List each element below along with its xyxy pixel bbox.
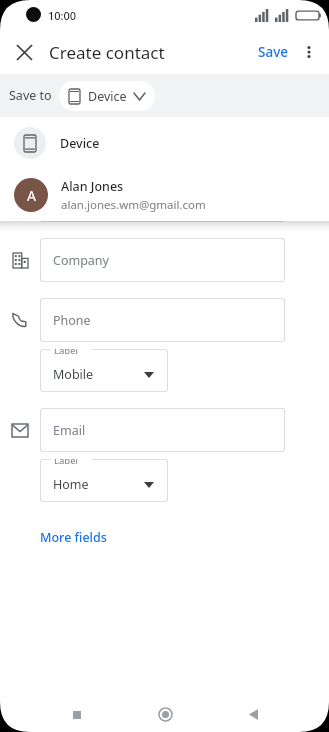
button[interactable]: More fields xyxy=(34,525,113,550)
button[interactable]: Close xyxy=(8,36,40,68)
staticText: Device xyxy=(60,135,100,152)
button[interactable]: Email xyxy=(40,408,285,452)
staticText: Home xyxy=(53,476,89,493)
staticText: Save to xyxy=(9,87,52,104)
staticText: Company xyxy=(53,252,109,269)
button[interactable]: Device xyxy=(59,81,155,111)
staticText: Phone xyxy=(53,312,91,329)
staticText: alan.jones.wm@gmail.com xyxy=(61,197,206,213)
staticText: 10:00 xyxy=(48,8,77,23)
button[interactable]: Company xyxy=(40,238,285,282)
staticText: A xyxy=(27,186,36,205)
button[interactable]: Surname xyxy=(40,178,285,222)
staticText: Mobile xyxy=(53,366,94,383)
button[interactable]: Home xyxy=(121,697,209,732)
button[interactable]: Save xyxy=(252,39,295,65)
staticText: Alan Jones xyxy=(61,178,124,195)
button[interactable]: First name xyxy=(40,123,285,167)
button[interactable]: Recent apps xyxy=(33,697,121,732)
staticText: Save xyxy=(258,43,289,61)
staticText: Email xyxy=(53,422,86,439)
button[interactable]: Back xyxy=(209,697,297,732)
button[interactable]: A xyxy=(0,169,329,221)
button[interactable]: Label xyxy=(40,349,168,392)
button[interactable]: Device xyxy=(0,117,329,169)
staticText: Surname xyxy=(53,192,107,209)
button[interactable]: Phone xyxy=(40,298,285,342)
staticText: First name xyxy=(53,137,116,154)
button[interactable]: More options xyxy=(295,38,323,66)
staticText: More fields xyxy=(40,529,107,546)
staticText: Create contact xyxy=(49,41,165,64)
staticText: Label xyxy=(54,459,78,467)
staticText: Device xyxy=(88,88,127,105)
staticText: Label xyxy=(54,349,78,357)
button[interactable]: Label xyxy=(40,459,168,502)
